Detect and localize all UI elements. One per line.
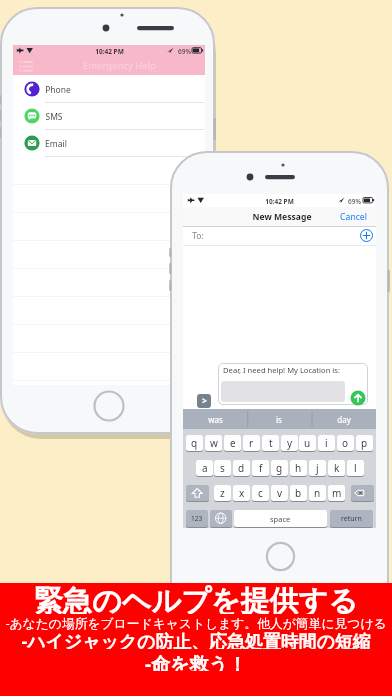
button[interactable]: space [234,510,327,527]
button[interactable]: r [243,435,260,451]
staticText: 10:42 PM [265,197,294,206]
button[interactable]: j [309,460,326,476]
button[interactable] [13,75,205,102]
staticText: SMS [45,111,63,122]
staticText: Email [45,138,67,149]
staticText: d [238,461,245,475]
staticText: return [341,514,362,524]
staticText: c [258,486,263,500]
staticText: is [276,414,282,425]
button[interactable]: d [233,460,250,476]
staticText: Cancel [340,211,367,223]
staticText: p [361,436,368,450]
button[interactable] [13,129,205,156]
button[interactable]: p [356,435,373,451]
staticText: r [249,436,254,450]
staticText: i [325,436,328,450]
button[interactable]: f [252,460,269,476]
staticText: y [287,436,293,450]
staticText: 123 [191,514,203,523]
staticText: -あなたの場所をブロードキャストします。他人が簡単に見つける [5,614,387,630]
staticText: > [202,395,207,407]
staticText: Dear, I need help! My Location is: [223,365,340,375]
staticText: -ハイジャックの防止、応急処置時間の短縮 [21,629,371,649]
staticText: x [239,486,245,500]
button[interactable] [186,485,209,501]
button[interactable]: t [262,435,279,451]
staticText: 緊急のヘルプを提供する [34,583,358,614]
staticText: n [314,486,321,500]
button[interactable]: s [214,460,231,476]
button[interactable]: > [197,394,211,408]
button[interactable]: n [309,485,326,501]
staticText: u [304,436,311,450]
button[interactable]: q [186,435,203,451]
staticText: s [220,461,225,475]
button[interactable]: was [183,409,247,429]
staticText: a [202,461,208,475]
staticText: b [295,486,302,500]
staticText: space [270,514,291,524]
staticText: f [259,461,263,475]
staticText: Phone [45,84,71,95]
staticText: 69% [178,47,191,56]
button[interactable]: return [330,510,373,527]
staticText: v [277,486,283,500]
button[interactable]: is [247,409,311,429]
button[interactable]: 123 [186,510,208,527]
staticText: t [269,436,273,450]
staticText: To: [192,230,204,242]
staticText: h [295,461,302,475]
staticText: 69% [348,197,361,206]
button[interactable]: x [233,485,250,501]
button[interactable]: m [328,485,345,501]
staticText: q [191,436,198,450]
button[interactable]: e [224,435,241,451]
button[interactable]: h [290,460,307,476]
button[interactable]: day [312,409,376,429]
button[interactable]: l [347,460,364,476]
button[interactable]: Cancel [334,207,372,226]
button[interactable]: o [337,435,354,451]
button[interactable]: k [328,460,345,476]
button[interactable]: z [214,485,231,501]
staticText: o [342,436,349,450]
staticText: 10:42 PM [95,47,124,56]
staticText: -命を救う！ [145,651,247,671]
button[interactable]: i [318,435,335,451]
button[interactable]: w [205,435,222,451]
staticText: was [208,414,223,425]
staticText: Emergency Help [83,59,156,72]
button[interactable] [210,510,232,527]
button[interactable]: a [196,460,213,476]
staticText: l [354,461,357,475]
staticText: j [316,461,319,475]
staticText: z [220,486,225,500]
button[interactable]: c [252,485,269,501]
button[interactable]: b [290,485,307,501]
button[interactable] [359,228,374,243]
button[interactable]: y [281,435,298,451]
staticText: w [210,436,218,450]
staticText: e [230,436,236,450]
staticText: New Message [252,211,312,223]
staticText: k [334,461,340,475]
button[interactable]: v [271,485,288,501]
button[interactable]: g [271,460,288,476]
staticText: day [337,414,351,425]
button[interactable] [13,102,205,129]
button[interactable] [351,485,374,501]
staticText: m [332,486,342,500]
staticText: g [276,461,283,475]
button[interactable]: u [299,435,316,451]
